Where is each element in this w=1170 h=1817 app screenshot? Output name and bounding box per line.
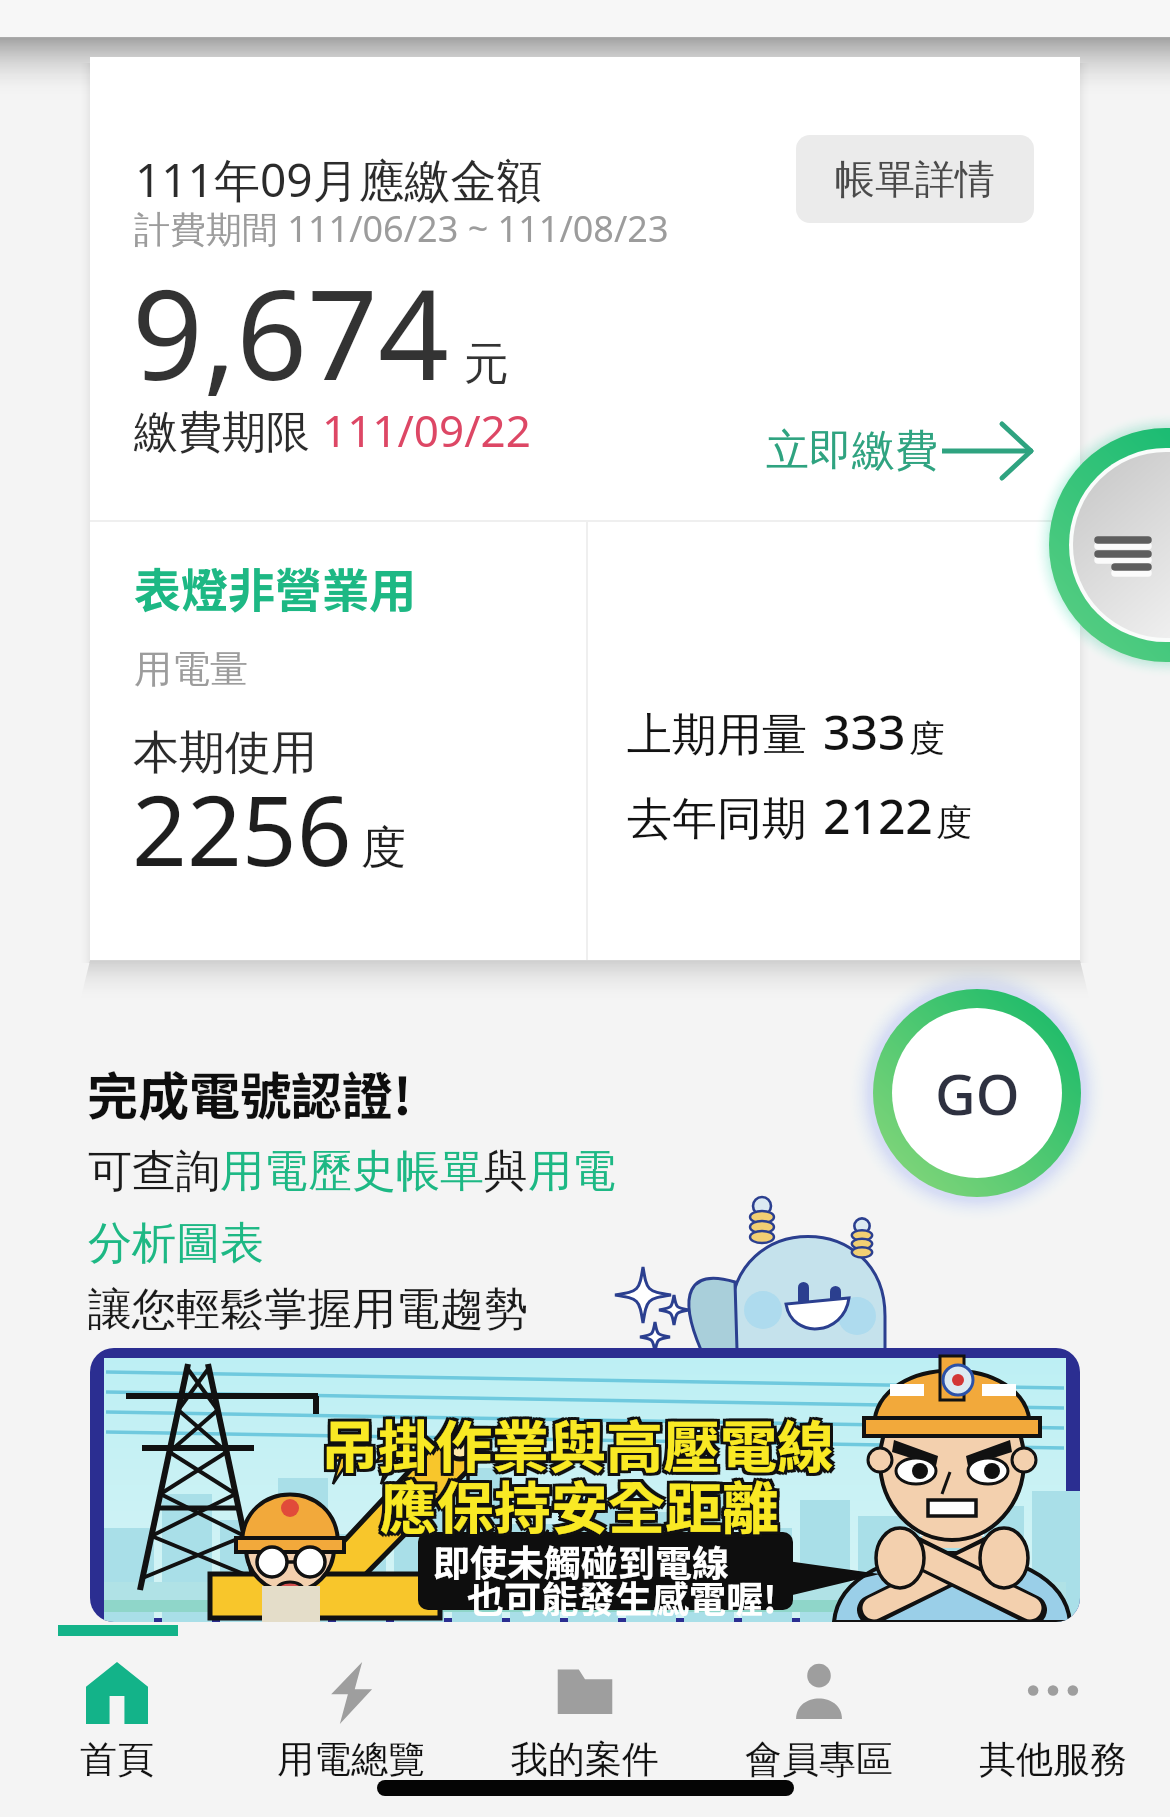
staticText: 完成電號認證!: [87, 1056, 412, 1130]
staticText: 應保持安全距離: [377, 1466, 776, 1549]
staticText: 用電: [528, 1144, 616, 1199]
staticText: 用電總覽: [277, 1736, 425, 1783]
staticText: 用電量: [134, 645, 248, 693]
staticText: 應保持安全距離: [377, 1460, 776, 1543]
staticText: 吊掛作業與高壓電線: [318, 1399, 831, 1482]
staticText: 帳單詳情: [835, 154, 995, 204]
staticText: 應保持安全距離: [380, 1463, 779, 1546]
button[interactable]: 我的案件: [468, 1640, 702, 1783]
button[interactable]: Open menu: [1048, 427, 1170, 663]
staticText: 吊掛作業與高壓電線: [321, 1399, 834, 1482]
staticText: 其他服務: [979, 1736, 1127, 1783]
button[interactable]: 用電總覽: [234, 1640, 468, 1783]
staticText: 吊掛作業與高壓電線: [318, 1405, 831, 1488]
staticText: 去年同期: [627, 791, 807, 848]
staticText: 我的案件: [511, 1736, 659, 1783]
button[interactable]: 帳單詳情: [796, 135, 1034, 223]
staticText: 度: [361, 820, 406, 877]
staticText: 9,674: [132, 247, 449, 416]
staticText: 與: [484, 1144, 528, 1199]
staticText: 繳費期限: [134, 400, 322, 460]
staticText: 度: [909, 716, 945, 761]
staticText: 應保持安全距離: [380, 1466, 779, 1549]
staticText: 會員專區: [745, 1736, 893, 1783]
staticText: 2256: [132, 763, 352, 894]
staticText: 立即繳費: [766, 424, 938, 478]
staticText: 應保持安全距離: [383, 1463, 782, 1546]
staticText: 元: [464, 336, 509, 393]
staticText: 也可能發生感電喔!: [467, 1570, 777, 1622]
staticText: 分析圖表: [88, 1216, 264, 1271]
button[interactable]: GO: [853, 969, 1101, 1217]
staticText: 111/09/22: [322, 400, 531, 460]
staticText: 吊掛作業與高壓電線: [324, 1399, 837, 1482]
staticText: 2122: [823, 783, 933, 848]
staticText: 應保持安全距離: [383, 1460, 782, 1543]
button[interactable]: 可查詢: [88, 1144, 616, 1199]
button[interactable]: 立即繳費: [766, 423, 1032, 479]
staticText: 應保持安全距離: [380, 1460, 779, 1543]
staticText: 可查詢: [88, 1144, 220, 1199]
staticText: 333: [823, 699, 906, 764]
staticText: 計費期間 111/06/23 ~ 111/08/23: [134, 204, 669, 253]
staticText: 111年09月應繳金額: [135, 148, 543, 211]
button[interactable]: 會員專區: [702, 1640, 936, 1783]
staticText: 用電歷史帳單: [220, 1144, 484, 1199]
staticText: 吊掛作業與高壓電線: [324, 1405, 837, 1488]
staticText: 吊掛作業與高壓電線: [324, 1402, 837, 1485]
staticText: 吊掛作業與高壓電線: [318, 1402, 831, 1485]
staticText: 即使未觸碰到電線: [433, 1534, 729, 1588]
staticText: 度: [936, 800, 972, 845]
staticText: 表燈非營業用: [134, 553, 416, 621]
staticText: 首頁: [80, 1736, 154, 1783]
staticText: 吊掛作業與高壓電線: [321, 1402, 834, 1485]
staticText: 應保持安全距離: [383, 1466, 782, 1549]
staticText: 本期使用: [133, 724, 317, 782]
staticText: 應保持安全距離: [377, 1463, 776, 1546]
button[interactable]: 其他服務: [936, 1640, 1170, 1783]
staticText: 上期用量: [627, 707, 807, 764]
staticText: 讓您輕鬆掌握用電趨勢: [88, 1282, 528, 1337]
button[interactable]: 吊掛作業與高壓電線: [90, 1348, 1080, 1622]
button[interactable]: 首頁: [0, 1640, 234, 1783]
staticText: 吊掛作業與高壓電線: [321, 1405, 834, 1488]
staticText: GO: [935, 1055, 1020, 1131]
